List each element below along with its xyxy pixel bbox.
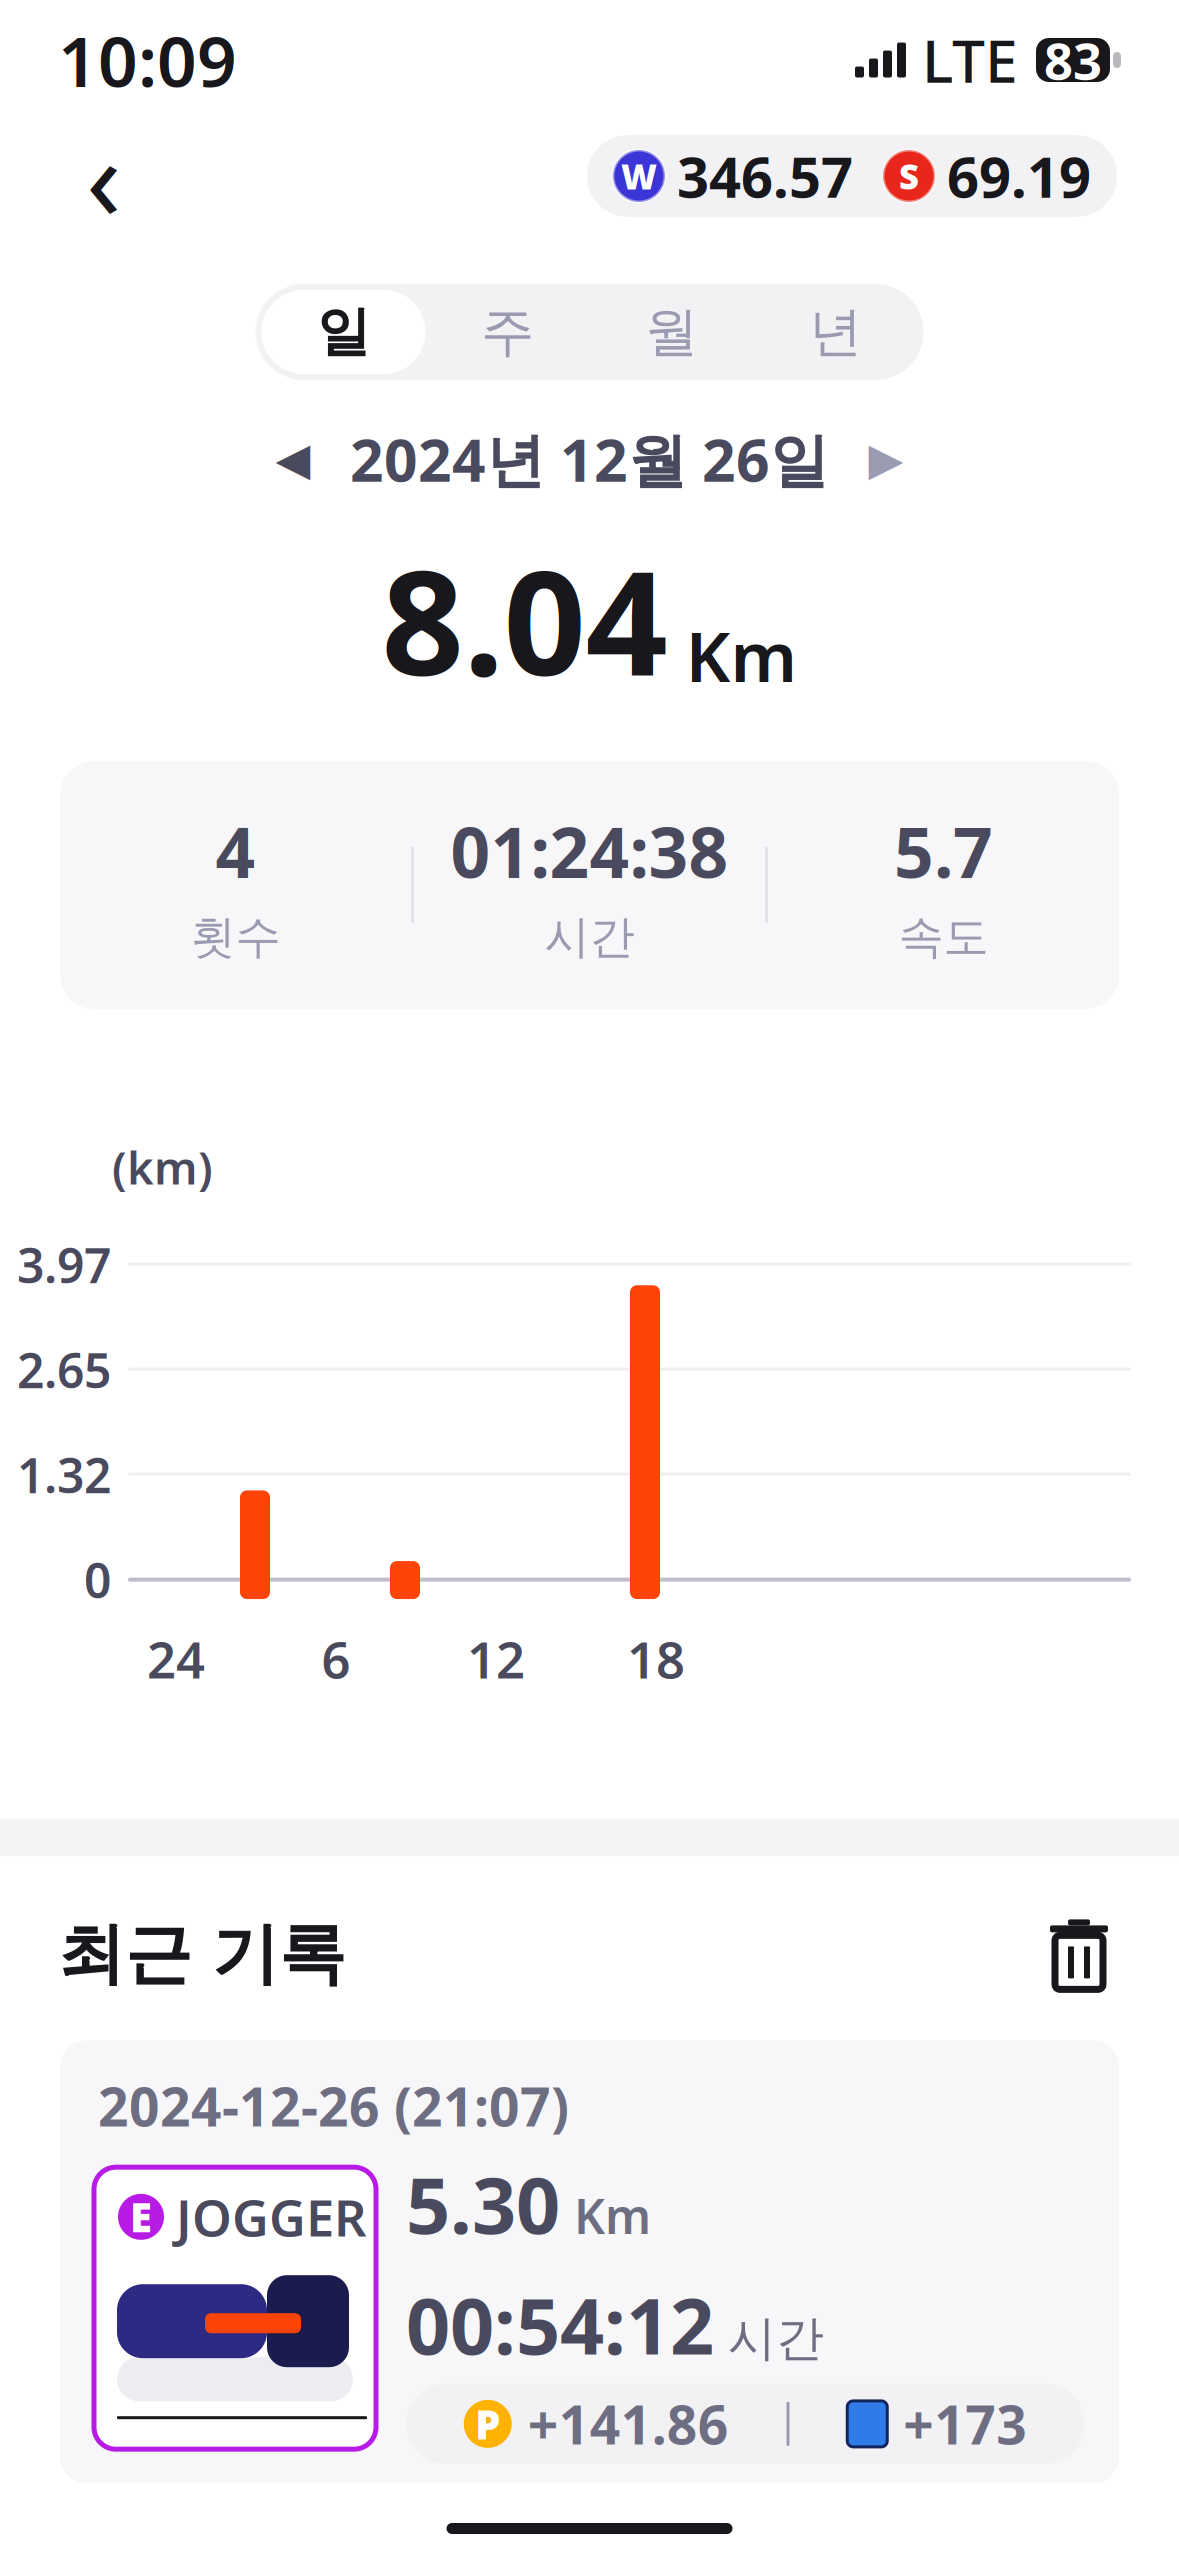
staticText: 2024-12-26 (21:07) [98,2070,569,2141]
staticText: 1.32 [17,1443,111,1506]
staticText: 횟수 [190,909,280,965]
staticText: 24 [147,1625,205,1692]
staticText: 6 [321,1625,350,1692]
staticText: 01:24:38 [450,805,728,897]
staticText: 00:54:12 [406,2273,714,2376]
staticText: 주 [481,299,534,365]
staticText: 5.7 [894,805,993,897]
staticText: ▶ [868,433,903,485]
staticText: 346.57 [677,139,853,213]
staticText: 월 [645,299,698,365]
staticText: 2.65 [17,1338,111,1401]
button[interactable]: Delete records [1037,1912,1121,1996]
staticText: (km) [112,1137,213,1197]
staticText: 속도 [898,909,988,965]
staticText: 시간 [544,909,634,965]
staticText: 최근 기록 [58,1913,346,1995]
staticText: 시간 [728,2309,824,2368]
staticText: 18 [627,1625,685,1692]
staticText: E [130,2190,152,2243]
staticText: 12 [467,1625,525,1692]
staticText: P [475,2397,500,2450]
button[interactable]: W [587,135,1117,217]
staticText: 69.19 [947,139,1091,213]
staticText: ◀ [275,433,310,485]
staticText: JOGGER [176,2183,367,2250]
staticText: 5.30 [406,2152,560,2255]
staticText: 년 [809,299,862,365]
staticText: S [899,153,919,199]
staticText: 0 [84,1548,111,1611]
button[interactable]: 월 [589,290,753,374]
staticText: 3.97 [17,1233,111,1296]
staticText: LTE [922,21,1018,99]
button[interactable]: 2024-12-26 (21:07) [60,2040,1119,2483]
staticText: Km [574,2183,651,2247]
staticText: +173 [903,2388,1027,2459]
staticText: 8.04 [381,524,667,715]
staticText: 4 [215,805,255,897]
staticText: 83 [1044,26,1102,94]
button[interactable]: Previous day [258,424,328,494]
staticText: ‹ [86,100,122,252]
button[interactable]: 주 [425,290,589,374]
staticText: +141.86 [528,2388,729,2459]
staticText: W [621,153,657,199]
staticText: 일 [317,299,370,365]
button[interactable]: 년 [753,290,917,374]
staticText: 10:09 [58,14,237,106]
staticText: Km [685,609,797,701]
button[interactable]: Back [62,134,146,218]
button[interactable]: 일 [261,290,425,374]
button[interactable]: Next day [851,424,921,494]
staticText: 2024년 12월 26일 [350,420,829,498]
